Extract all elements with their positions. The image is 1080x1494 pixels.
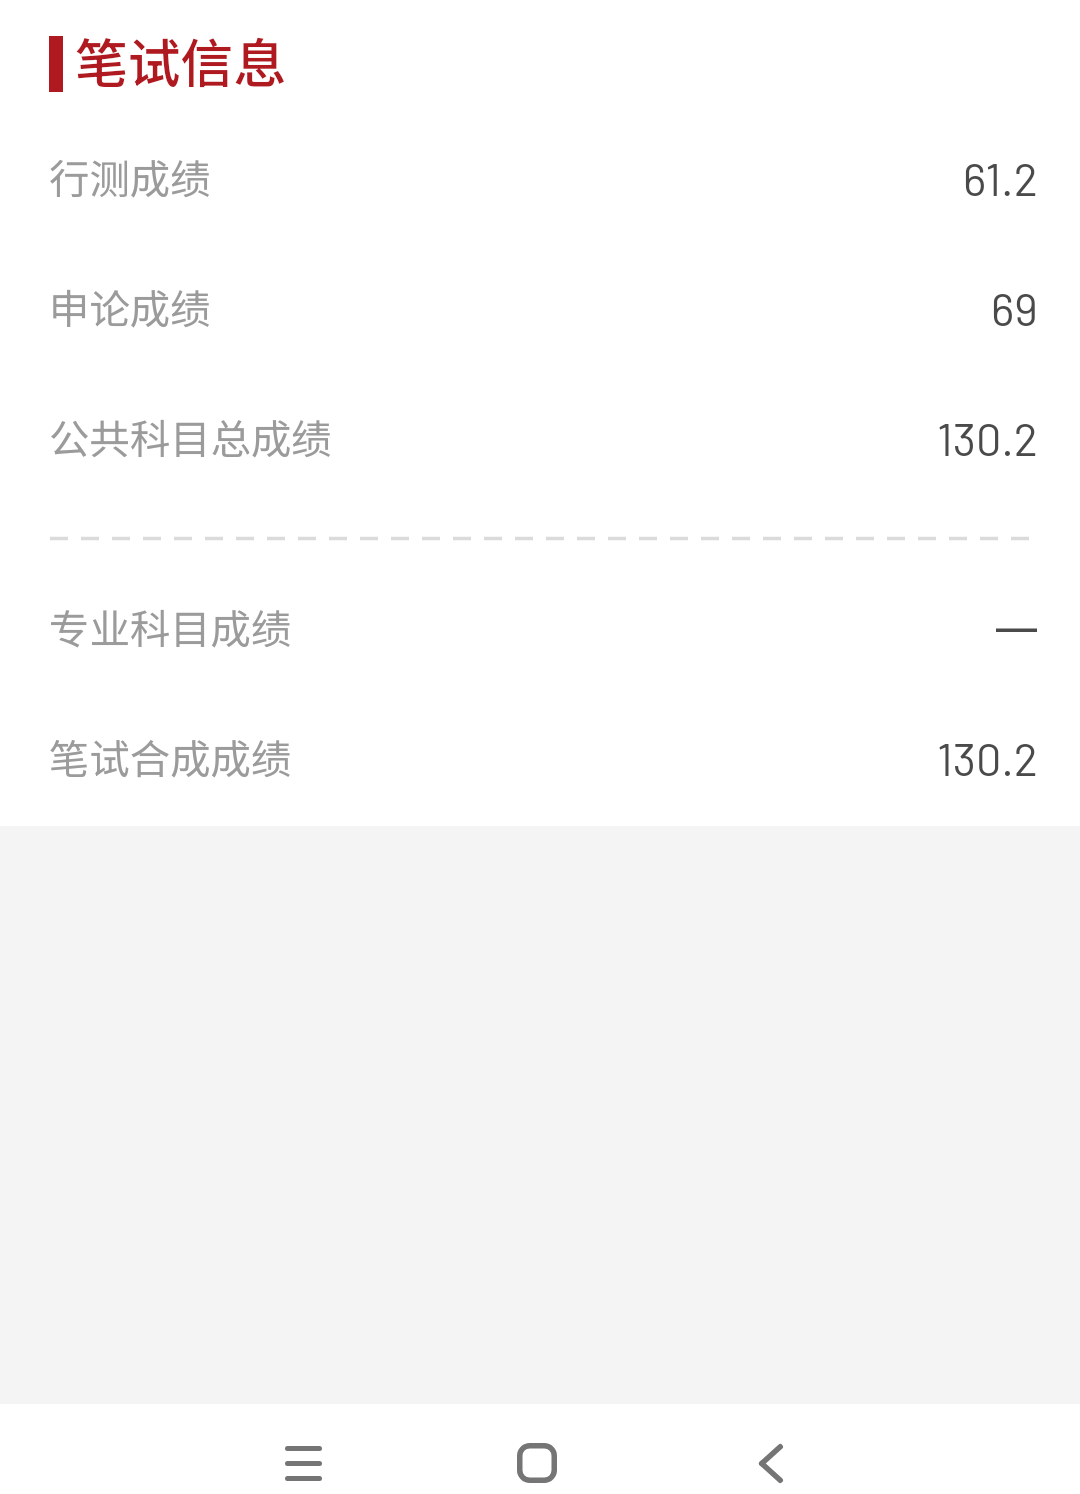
button[interactable]: 笔试合成成绩 (0, 693, 1080, 823)
button[interactable]: Home (492, 1418, 582, 1494)
staticText: 笔试信息 (75, 22, 287, 98)
button[interactable]: Menu (258, 1418, 348, 1494)
button[interactable]: 公共科目总成绩 (0, 373, 1080, 503)
button[interactable]: 行测成绩 (0, 113, 1080, 243)
staticText: 130.2 (937, 731, 1038, 785)
button[interactable]: 申论成绩 (0, 243, 1080, 373)
staticText: 申论成绩 (49, 277, 211, 335)
staticText: 130.2 (937, 411, 1038, 465)
button[interactable]: 专业科目成绩 (0, 563, 1080, 693)
staticText: 61.2 (963, 151, 1038, 205)
button[interactable]: Back (726, 1418, 816, 1494)
staticText: 笔试合成成绩 (49, 727, 292, 785)
staticText: 69 (991, 281, 1038, 335)
staticText: 公共科目总成绩 (49, 407, 332, 465)
staticText: 专业科目成绩 (49, 597, 292, 655)
staticText: 行测成绩 (49, 147, 211, 205)
